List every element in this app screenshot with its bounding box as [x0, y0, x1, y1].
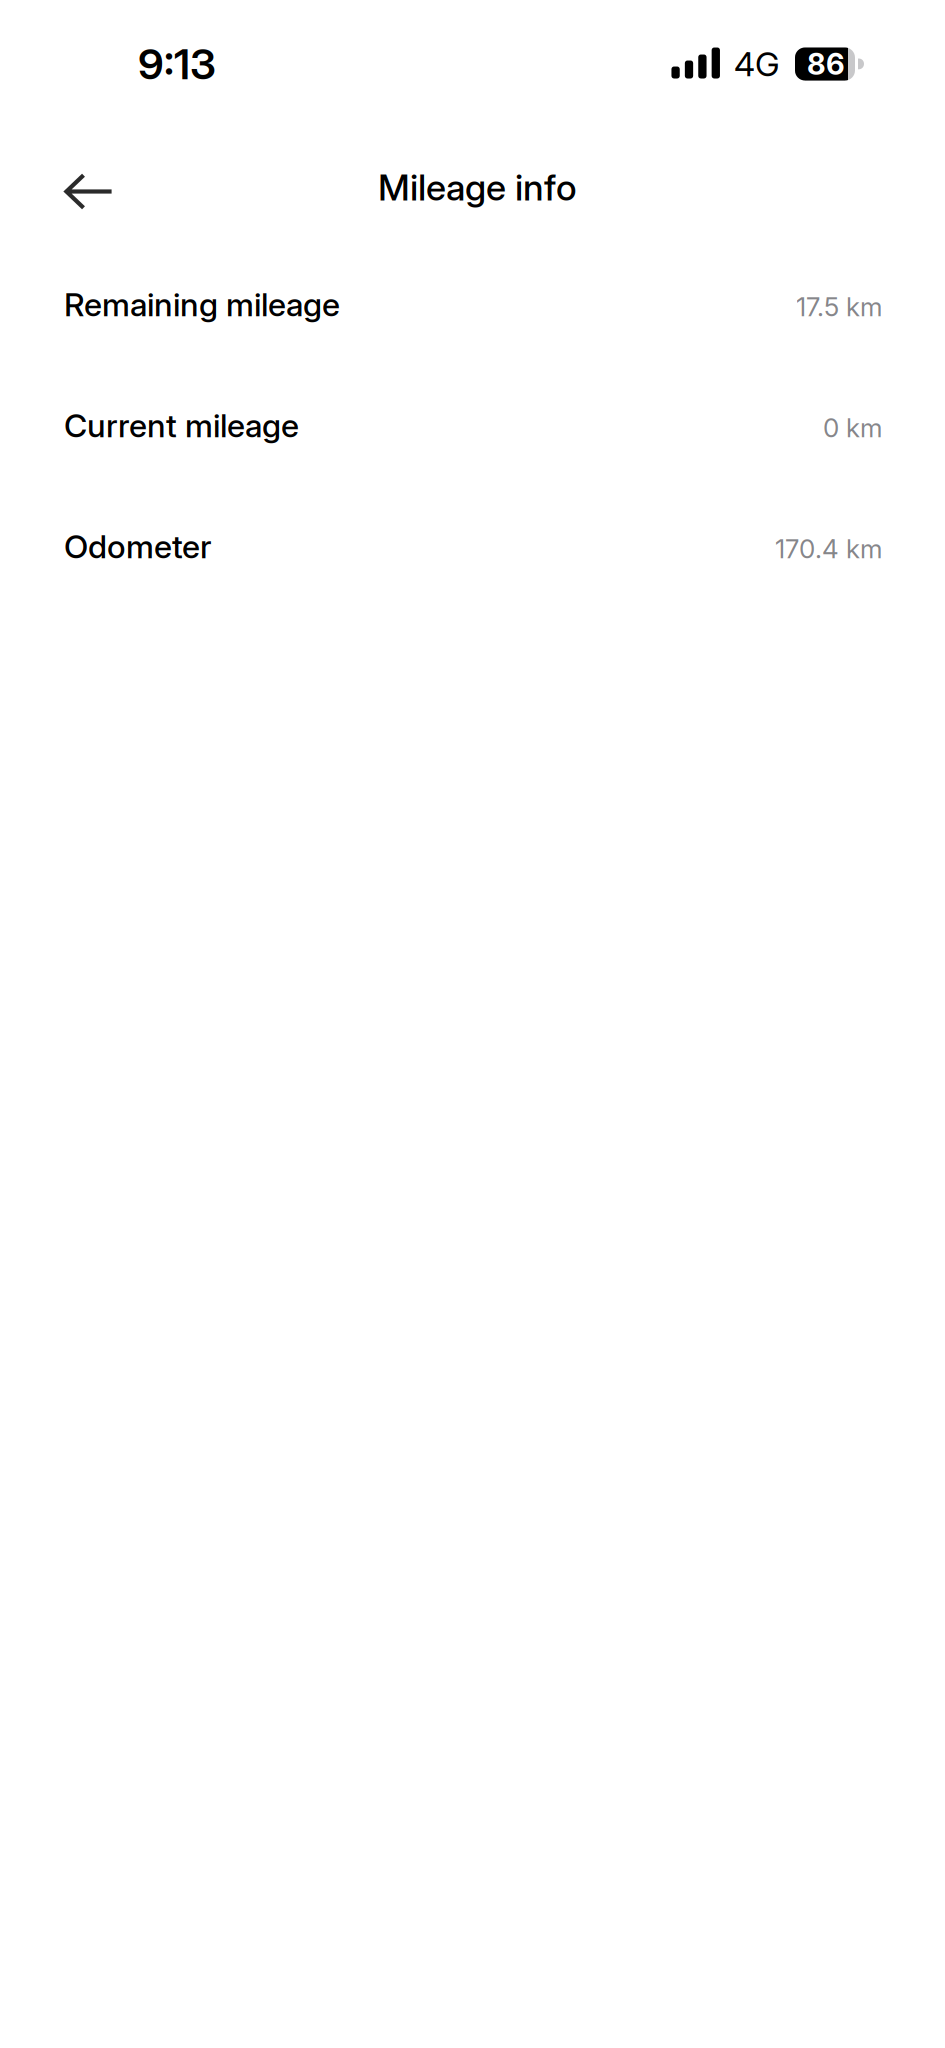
staticText: Odometer [64, 527, 212, 566]
staticText: 4G [734, 44, 780, 84]
staticText: Remaining mileage [64, 285, 340, 324]
button[interactable]: Back [45, 147, 133, 235]
staticText: Mileage info [378, 166, 577, 209]
staticText: 170.4 km [775, 533, 882, 564]
staticText: 17.5 km [796, 291, 882, 322]
staticText: Current mileage [64, 406, 299, 445]
staticText: 0 km [823, 412, 882, 443]
staticText: 86 [807, 46, 845, 82]
staticText: 9:13 [138, 38, 216, 89]
